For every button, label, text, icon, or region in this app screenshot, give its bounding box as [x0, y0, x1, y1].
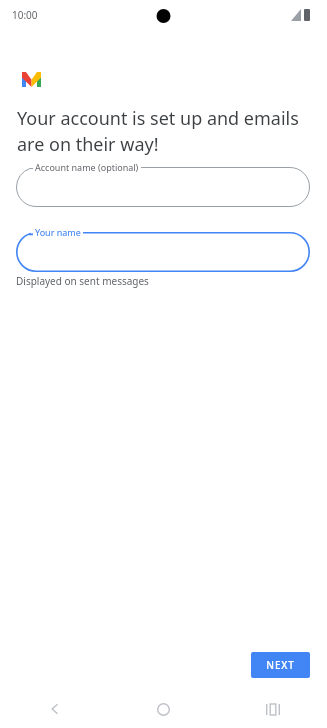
staticText: NEXT [266, 658, 295, 672]
staticText: 10:00 [12, 8, 38, 22]
staticText: Displayed on sent messages [16, 274, 149, 288]
staticText: Your account is set up and emails are on… [17, 106, 307, 156]
button[interactable]: NEXT [251, 652, 310, 678]
button[interactable]: Your name [16, 232, 310, 272]
button[interactable]: Account name (optional) [16, 167, 310, 207]
staticText: Account name (optional) [35, 161, 139, 173]
button[interactable]: Home [109, 690, 218, 728]
button[interactable]: Back [0, 690, 109, 728]
staticText: Your name [35, 226, 81, 238]
button[interactable]: Recents [218, 690, 327, 728]
